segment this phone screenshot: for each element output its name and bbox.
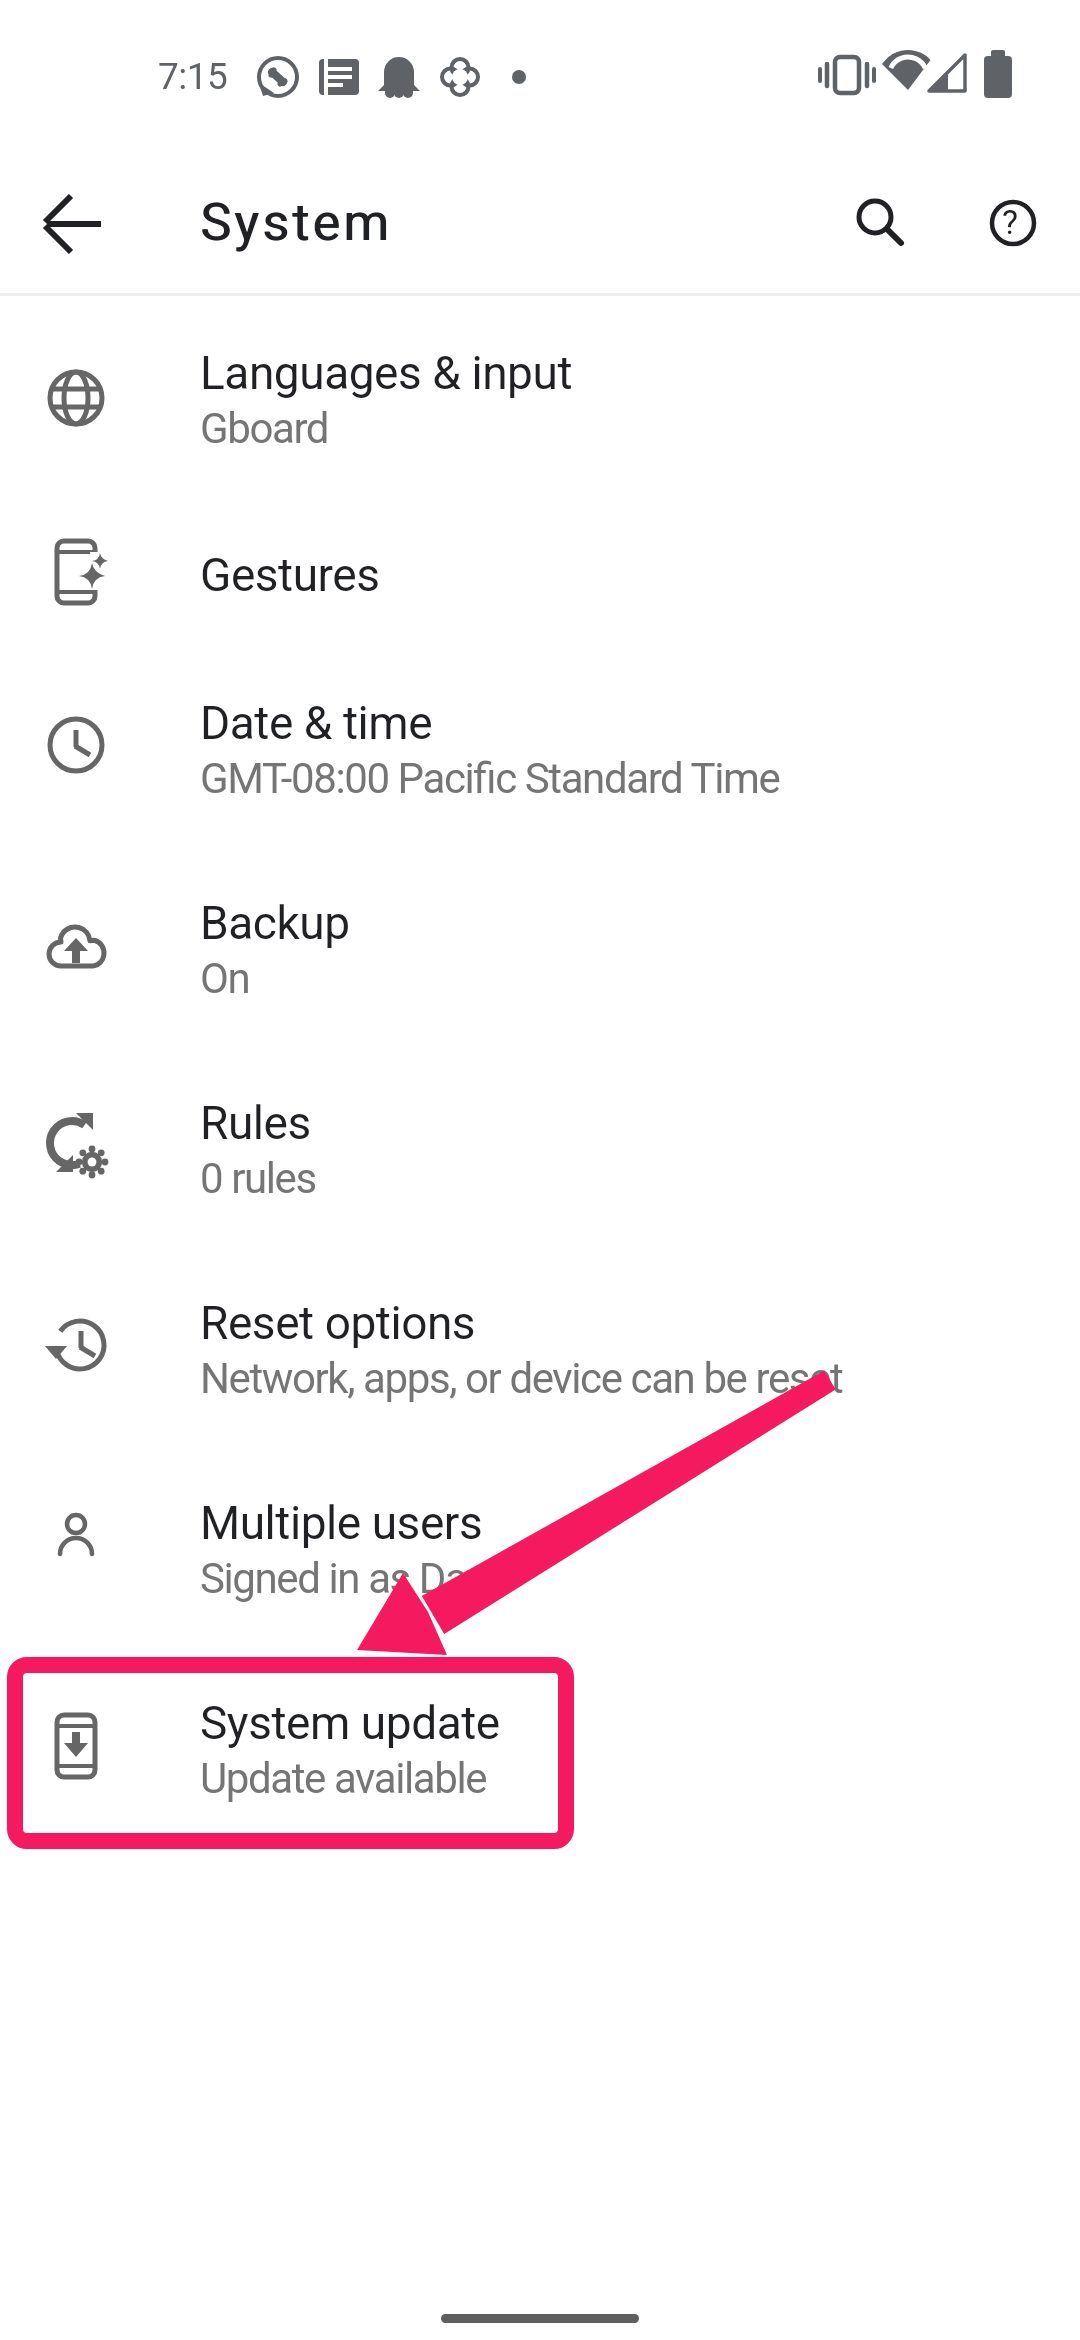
button[interactable] (0, 1650, 1080, 1850)
button[interactable] (845, 188, 915, 258)
staticText: System (200, 192, 392, 253)
button[interactable] (0, 498, 1080, 650)
button[interactable] (0, 1250, 1080, 1450)
staticText: Multiple users (200, 1496, 483, 1550)
button[interactable] (0, 650, 1080, 850)
staticText: System (201, 192, 393, 253)
staticText: Gboard (200, 404, 329, 453)
staticText: ? (1002, 202, 1019, 242)
button[interactable] (40, 190, 110, 260)
staticText: Reset options (200, 1296, 476, 1350)
staticText: Languages & input (200, 346, 572, 400)
staticText: Update available (200, 1754, 487, 1803)
button[interactable] (0, 850, 1080, 1050)
staticText: On (200, 954, 250, 1003)
staticText: 7:15 (158, 55, 228, 98)
button[interactable] (978, 188, 1048, 258)
staticText: Rules (200, 1096, 311, 1150)
staticText: Signed in as Dav (200, 1554, 486, 1603)
button[interactable] (0, 298, 1080, 498)
button[interactable] (0, 1050, 1080, 1250)
staticText: 0 rules (200, 1154, 316, 1203)
staticText: GMT-08:00 Pacific Standard Time (200, 754, 780, 803)
button[interactable] (0, 1450, 1080, 1650)
staticText: System update (200, 1696, 500, 1750)
staticText: Network, apps, or device can be reset (200, 1354, 843, 1403)
staticText: Date & time (200, 696, 433, 750)
staticText: Gestures (200, 548, 380, 602)
staticText: Backup (200, 896, 350, 950)
